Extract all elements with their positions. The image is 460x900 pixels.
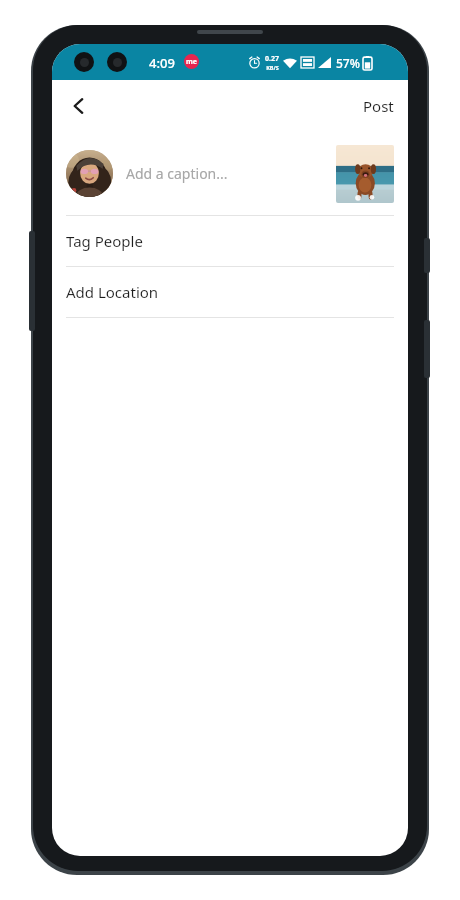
staticText: KB/S [266, 64, 279, 71]
staticText: Add a caption... [126, 164, 336, 183]
staticText: me [186, 57, 198, 67]
staticText: Post [363, 96, 394, 116]
staticText: Tag People [66, 231, 143, 251]
button[interactable]: Add Location [52, 267, 408, 317]
button[interactable]: Post [355, 88, 402, 124]
staticText: 57% [336, 55, 360, 71]
button[interactable]: Tag People [52, 216, 408, 266]
button[interactable]: Add a caption... [52, 132, 408, 215]
staticText: 4:09 [149, 54, 175, 72]
staticText: 0.27 [265, 54, 279, 64]
button[interactable]: Selected photo [336, 145, 394, 203]
staticText: Add Location [66, 282, 159, 302]
button[interactable]: Back [58, 85, 100, 127]
